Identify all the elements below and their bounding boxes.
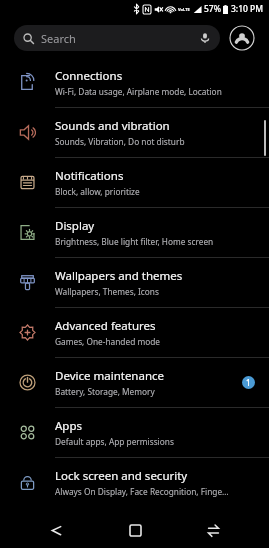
button[interactable]: Device maintenance [0, 358, 269, 407]
staticText: VoLTE [178, 7, 190, 12]
staticText: Sounds and vibration [55, 118, 170, 134]
staticText: 1 [246, 377, 251, 388]
staticText: Sounds, Vibration, Do not disturb [55, 136, 185, 147]
staticText: Display [55, 218, 95, 234]
button[interactable]: Notifications [0, 158, 269, 207]
staticText: Connections [55, 68, 123, 84]
staticText: Device maintenance [55, 368, 165, 384]
staticText: 57% [204, 3, 221, 15]
button[interactable]: Wallpapers and themes [0, 258, 269, 307]
button[interactable]: Recents [191, 514, 235, 546]
staticText: Notifications [55, 168, 124, 184]
staticText: Default apps, App permissions [55, 436, 174, 447]
button[interactable]: Apps [0, 408, 269, 457]
button[interactable]: Advanced features [0, 308, 269, 357]
staticText: Wi-Fi, Data usage, Airplane mode, Locati… [55, 86, 222, 97]
staticText: Search [41, 31, 76, 46]
staticText: Advanced features [55, 318, 156, 334]
other: Voice search [199, 32, 211, 44]
staticText: Lock screen and security [55, 468, 188, 484]
button[interactable]: Back [34, 514, 78, 546]
staticText: Brightness, Blue light filter, Home scre… [55, 236, 214, 247]
button[interactable]: Search [14, 25, 220, 51]
staticText: 3:10 PM [231, 3, 264, 15]
staticText: Block, allow, prioritize [55, 186, 140, 197]
staticText: Wallpapers, Themes, Icons [55, 286, 159, 297]
staticText: Apps [55, 418, 83, 434]
button[interactable]: Account [229, 25, 255, 51]
staticText: Always On Display, Face Recognition, Fin… [55, 486, 229, 497]
staticText: Games, One-handed mode [55, 336, 160, 347]
button[interactable]: Home [113, 514, 157, 546]
button[interactable]: Lock screen and security [0, 458, 269, 507]
button[interactable]: Connections [0, 58, 269, 107]
button[interactable]: Display [0, 208, 269, 257]
staticText: Wallpapers and themes [55, 268, 183, 284]
staticText: Battery, Storage, Memory [55, 386, 155, 397]
button[interactable]: Sounds and vibration [0, 108, 269, 157]
